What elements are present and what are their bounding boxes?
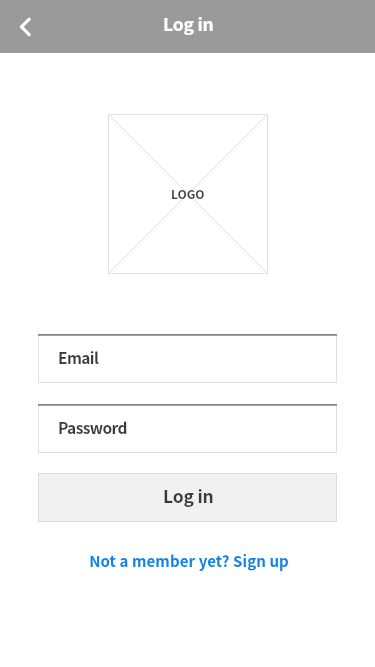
- button[interactable]: Not a member yet? Sign up: [1, 548, 375, 574]
- staticText: Password: [58, 416, 127, 438]
- button[interactable]: Password: [38, 404, 337, 453]
- staticText: Email: [58, 346, 99, 368]
- staticText: LOGO: [171, 185, 205, 202]
- button[interactable]: Log in: [38, 473, 337, 522]
- staticText: Log in: [163, 11, 214, 36]
- button[interactable]: Email: [38, 334, 337, 383]
- staticText: Not a member yet? Sign up: [89, 550, 289, 572]
- button[interactable]: Back: [0, 0, 53, 53]
- staticText: Log in: [163, 483, 214, 508]
